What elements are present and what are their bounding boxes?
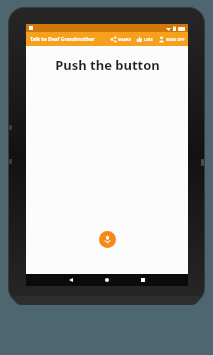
staticText: SHARE [118, 37, 131, 42]
staticText: Talk to Deaf Grandmother [30, 36, 95, 43]
staticText: LIKE [144, 37, 153, 42]
staticText: Push the button [55, 56, 160, 74]
staticText: SIGN OFF [166, 37, 185, 42]
button[interactable]: Home [96, 274, 118, 286]
button[interactable]: Back [60, 274, 82, 286]
button[interactable]: Sign off [157, 32, 186, 46]
button[interactable]: Share [109, 32, 132, 46]
button[interactable]: Start speaking [99, 231, 116, 248]
button[interactable]: Recent apps [132, 274, 154, 286]
button[interactable]: Like [135, 32, 154, 46]
